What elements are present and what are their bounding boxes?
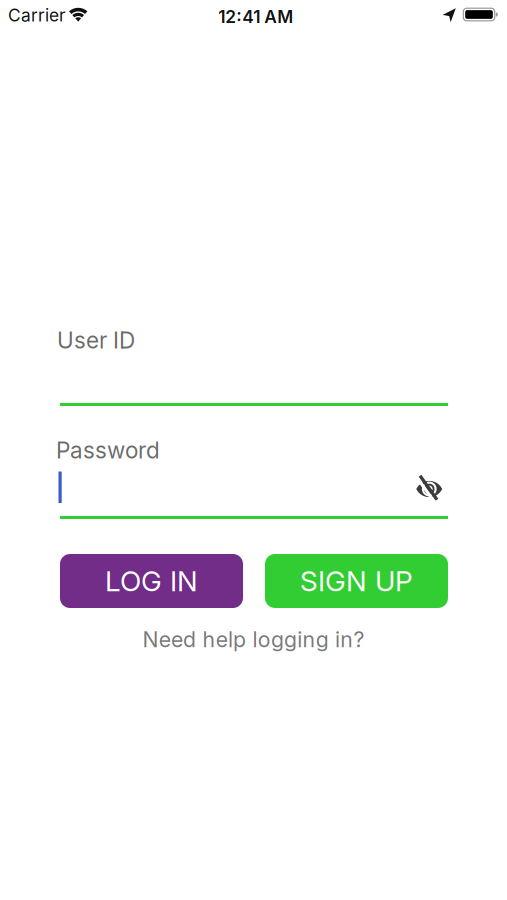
button[interactable]: Show password	[413, 470, 449, 506]
staticText: Need help logging in?	[142, 627, 364, 652]
staticText: Carrier	[8, 5, 66, 25]
button[interactable]: LOG IN	[60, 554, 243, 608]
staticText: LOG IN	[105, 564, 198, 597]
staticText: SIGN UP	[300, 564, 413, 597]
staticText: User ID	[57, 327, 135, 354]
button[interactable]: Need help logging in?	[142, 627, 364, 652]
button[interactable]: SIGN UP	[265, 554, 448, 608]
staticText: Password	[56, 437, 160, 464]
staticText: 12:41 AM	[218, 6, 293, 27]
